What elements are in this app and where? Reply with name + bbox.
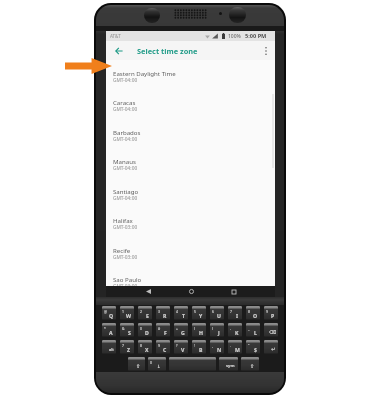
button[interactable]: W [120, 306, 134, 320]
button[interactable]: Eastern Daylight Time [106, 60, 275, 89]
staticText: 9 [158, 343, 160, 348]
staticText: ) [212, 326, 214, 331]
staticText: Eastern Daylight Time [113, 69, 176, 77]
staticText: GMT-04:00 [113, 136, 138, 143]
staticText: 100% [228, 33, 241, 40]
staticText: Z [127, 346, 131, 353]
button[interactable]: X [138, 340, 152, 354]
staticText: Manaus [113, 157, 136, 165]
button[interactable]: $ [246, 340, 260, 354]
staticText: 7 [230, 309, 232, 314]
staticText: Santiago [113, 187, 139, 195]
staticText: K [235, 329, 239, 336]
button[interactable]: Halifax [106, 207, 275, 236]
staticText: GMT-04:00 [113, 195, 138, 202]
staticText: V [181, 346, 185, 353]
button[interactable]: B [192, 340, 206, 354]
button[interactable]: ↵ [264, 340, 278, 354]
staticText: 9 [266, 309, 268, 314]
button[interactable]: K [228, 323, 242, 337]
button[interactable]: Recife [106, 237, 275, 266]
button[interactable]: S [120, 323, 134, 337]
button[interactable] [169, 357, 216, 371]
staticText: A [109, 329, 113, 336]
button[interactable]: M [228, 340, 242, 354]
staticText: L [254, 329, 257, 336]
staticText: Q [109, 312, 114, 319]
staticText: Y [199, 312, 203, 319]
button[interactable]: Santiago [106, 178, 275, 207]
button[interactable]: More options [258, 41, 274, 60]
staticText: 0 [140, 326, 142, 331]
button[interactable]: J [210, 323, 224, 337]
staticText: B [199, 346, 203, 353]
button[interactable]: N [210, 340, 224, 354]
staticText: GMT-03:00 [113, 283, 138, 290]
staticText: 6 [212, 309, 214, 314]
button[interactable]: Recents [224, 286, 244, 297]
button[interactable]: V [174, 340, 188, 354]
button[interactable]: Manaus [106, 148, 275, 177]
staticText: _ [248, 326, 250, 331]
button[interactable]: E [138, 306, 152, 320]
button[interactable]: P [264, 306, 278, 320]
button[interactable]: Z [120, 340, 134, 354]
staticText: alt [109, 347, 114, 352]
staticText: * [104, 326, 106, 331]
button[interactable]: Sao Paulo [106, 266, 275, 295]
button[interactable]: L [246, 323, 260, 337]
button[interactable]: R [156, 306, 170, 320]
staticText: GMT-03:00 [113, 224, 138, 231]
button[interactable]: F [156, 323, 170, 337]
button[interactable]: Home [181, 286, 201, 297]
button[interactable]: ↓ [148, 357, 166, 371]
button[interactable]: A [102, 323, 116, 337]
staticText: Select time zone [137, 46, 198, 56]
staticText: Recife [113, 246, 131, 254]
staticText: E [146, 312, 149, 319]
button[interactable]: Caracas [106, 89, 275, 118]
staticText: . [230, 343, 231, 348]
button[interactable]: sym [219, 357, 238, 371]
staticText: Caracas [113, 98, 136, 106]
staticText: Sao Paulo [113, 275, 142, 283]
button[interactable]: U [210, 306, 224, 320]
staticText: J [218, 329, 220, 336]
staticText: & [122, 326, 125, 331]
staticText: C [163, 346, 167, 353]
staticText: Barbados [113, 128, 141, 136]
staticText: N [217, 346, 222, 353]
staticText: Halifax [113, 216, 133, 224]
button[interactable]: ⌫ [264, 323, 278, 337]
button[interactable]: ⇧ [128, 357, 145, 371]
staticText: ⇧ [136, 363, 141, 369]
button[interactable]: alt [102, 340, 116, 354]
button[interactable]: Q [102, 306, 116, 320]
button[interactable]: G [174, 323, 188, 337]
button[interactable]: O [246, 306, 260, 320]
staticText: # [158, 326, 161, 331]
staticText: ↵ [271, 346, 276, 352]
staticText: 8 [140, 343, 142, 348]
button[interactable]: Y [192, 306, 206, 320]
staticText: GMT-04:00 [113, 106, 138, 113]
button[interactable]: H [192, 323, 206, 337]
staticText: T [182, 312, 185, 319]
button[interactable]: I [228, 306, 242, 320]
button[interactable]: Back [111, 41, 127, 60]
staticText: 7 [122, 343, 124, 348]
staticText: U [217, 312, 221, 319]
button[interactable]: T [174, 306, 188, 320]
staticText: 1 [122, 309, 124, 314]
staticText: - [230, 326, 232, 331]
button[interactable]: Barbados [106, 119, 275, 148]
staticText: , [212, 343, 213, 348]
button[interactable]: Back [138, 286, 158, 297]
button[interactable]: D [138, 323, 152, 337]
staticText: M [235, 346, 240, 353]
button[interactable]: ⇧ [241, 357, 259, 371]
staticText: 0 [150, 360, 152, 365]
staticText: R [163, 312, 167, 319]
button[interactable]: C [156, 340, 170, 354]
staticText: F [164, 329, 167, 336]
